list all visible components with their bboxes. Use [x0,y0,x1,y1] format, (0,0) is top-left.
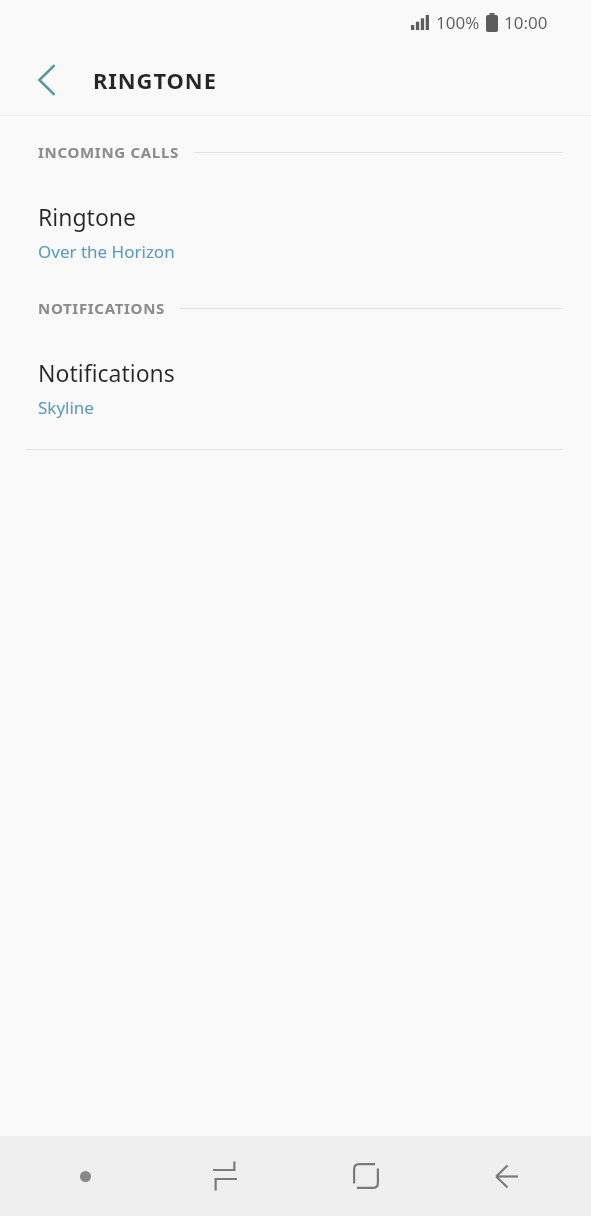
staticText: NOTIFICATIONS [38,298,166,318]
button[interactable]: Menu [30,1136,140,1216]
staticText: Skyline [38,396,94,419]
staticText: Ringtone [38,201,137,232]
staticText: Over the Horizon [38,240,175,263]
staticText: 100% [436,11,480,34]
staticText: INCOMING CALLS [38,142,180,162]
button[interactable]: Recent apps [170,1136,280,1216]
button[interactable]: Notifications [0,355,591,425]
button[interactable]: Back [18,52,74,108]
staticText: 10:00 [504,11,548,34]
staticText: RINGTONE [93,65,217,95]
staticText: Notifications [38,357,175,388]
button[interactable]: Back [451,1136,561,1216]
button[interactable]: Ringtone [0,199,591,269]
button[interactable]: Home [311,1136,421,1216]
